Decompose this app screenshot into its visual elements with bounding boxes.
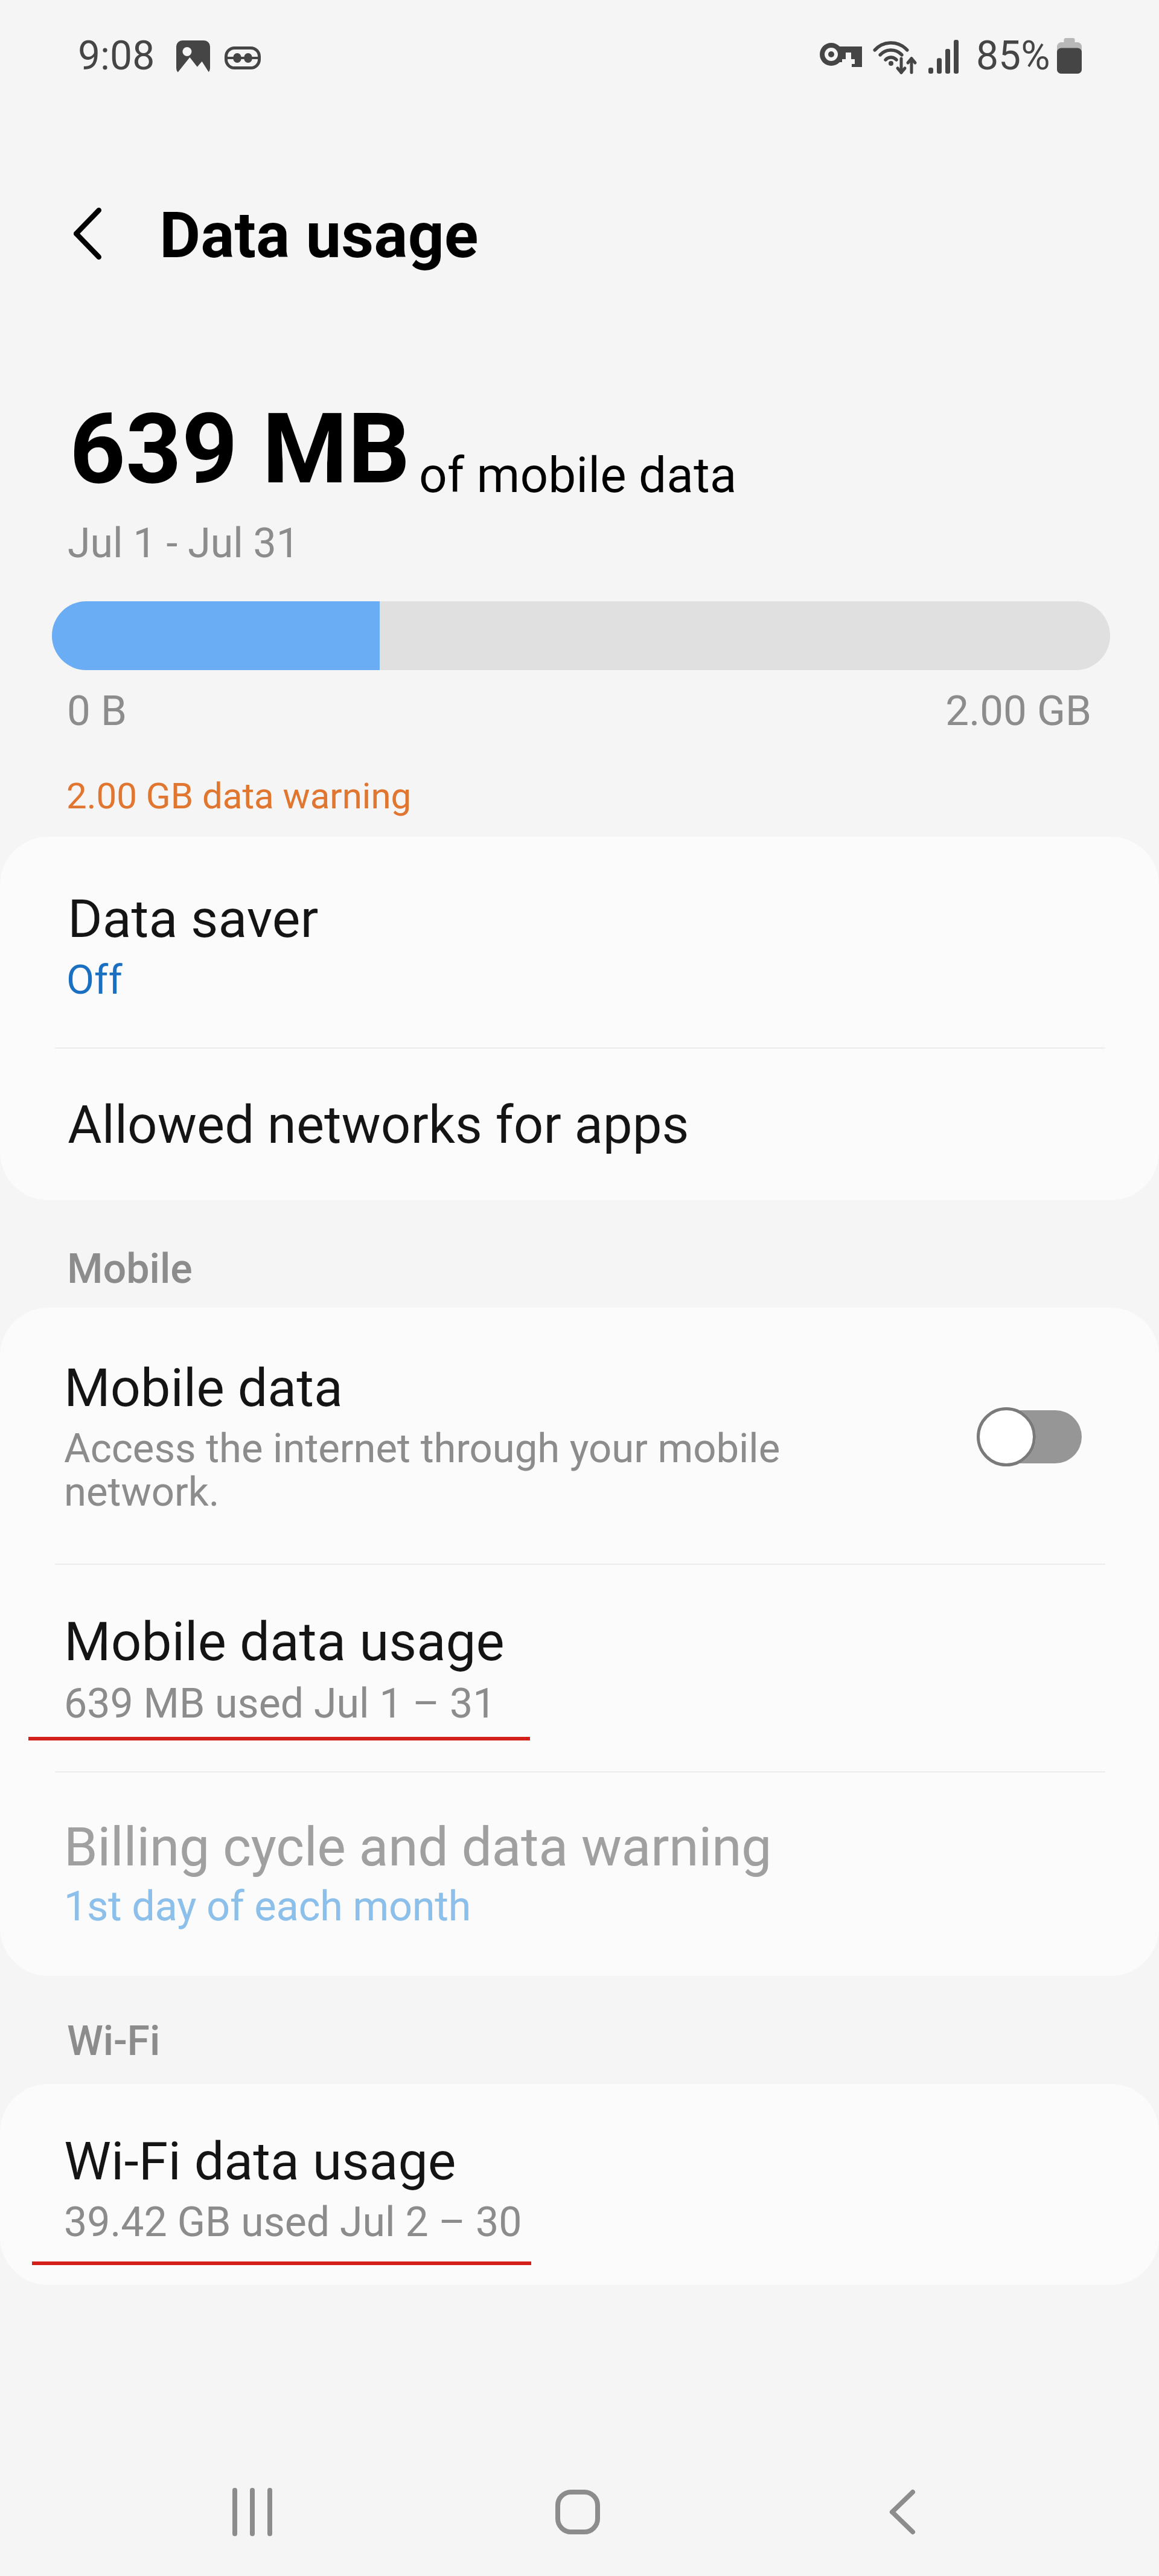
staticText: Jul 1 - Jul 31 bbox=[68, 519, 299, 567]
button[interactable]: Home bbox=[481, 2439, 674, 2576]
staticText: Off bbox=[66, 956, 123, 1004]
staticText: 639 MB used Jul 1 – 31 bbox=[64, 1680, 496, 1728]
staticText: Mobile bbox=[67, 1245, 193, 1293]
button[interactable]: Mobile data switch, off bbox=[963, 1397, 1095, 1477]
staticText: Mobile data bbox=[64, 1357, 343, 1419]
staticText: Wi-Fi data usage bbox=[64, 2130, 456, 2192]
staticText: of mobile data bbox=[419, 446, 737, 504]
button[interactable]: Back bbox=[0, 181, 543, 290]
staticText: Wi-Fi bbox=[67, 2017, 161, 2065]
button[interactable]: Wi-Fi data usage bbox=[0, 2084, 1159, 2285]
staticText: 2.00 GB bbox=[0, 686, 1091, 735]
staticText: 1st day of each month bbox=[64, 1882, 471, 1931]
staticText: 2.00 GB data warning bbox=[66, 775, 412, 817]
button[interactable]: Back bbox=[806, 2439, 999, 2576]
button[interactable]: Billing cycle and data warning bbox=[0, 1772, 1159, 1976]
staticText: Mobile data usage bbox=[64, 1610, 505, 1673]
staticText: 85% bbox=[976, 33, 1050, 79]
staticText: Access the internet through your mobile … bbox=[64, 1425, 781, 1515]
button[interactable]: Mobile data usage bbox=[0, 1565, 1159, 1771]
button[interactable]: Data saver bbox=[0, 837, 1159, 1047]
button[interactable]: Mobile data bbox=[0, 1308, 1159, 1564]
staticText: Data usage bbox=[159, 199, 479, 273]
staticText: 9:08 bbox=[78, 33, 155, 79]
staticText: Data saver bbox=[68, 887, 319, 950]
staticText: 0 B bbox=[67, 686, 127, 735]
staticText: 39.42 GB used Jul 2 – 30 bbox=[64, 2198, 522, 2246]
staticText: Billing cycle and data warning bbox=[64, 1815, 772, 1878]
staticText: 639 MB bbox=[69, 392, 410, 507]
button[interactable]: Allowed networks for apps bbox=[0, 1049, 1159, 1200]
button[interactable]: Recent apps bbox=[156, 2439, 349, 2576]
staticText: Allowed networks for apps bbox=[68, 1094, 689, 1155]
